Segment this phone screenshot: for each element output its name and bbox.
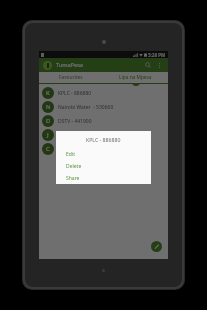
staticText: Edit	[66, 151, 75, 158]
staticText: Nairobi Water - 530600	[58, 104, 114, 111]
staticText: Delete	[66, 163, 82, 170]
button[interactable]: Lipa na Mpesa	[103, 72, 168, 83]
staticText: Lipa na Mpesa	[119, 74, 152, 81]
staticText: DSTV - 441900	[58, 118, 92, 125]
button[interactable]: Delete	[56, 160, 151, 172]
staticText: KPLC - 886880	[86, 136, 121, 143]
staticText: KPLC - 886880	[58, 90, 92, 97]
staticText: Share	[66, 175, 80, 182]
button[interactable]: More options	[154, 60, 164, 70]
staticText: N	[46, 103, 51, 111]
staticText: C	[46, 145, 50, 153]
button[interactable]: K	[39, 86, 168, 100]
button[interactable]: N	[39, 100, 168, 114]
button[interactable]: D	[39, 114, 168, 128]
button[interactable]: Share	[56, 172, 151, 184]
staticText: TumaPesa	[56, 61, 84, 69]
staticText: K	[46, 89, 50, 97]
button[interactable]: J	[39, 128, 168, 142]
staticText: J	[47, 131, 49, 139]
button[interactable]: App logo	[43, 61, 52, 70]
staticText: Favourites	[59, 74, 83, 81]
button[interactable]: Edit	[56, 148, 151, 160]
button[interactable]: C	[39, 142, 168, 156]
staticText: 3:28 PM	[148, 52, 166, 58]
button[interactable]: Favourites	[39, 72, 103, 83]
button[interactable]: Search	[143, 60, 153, 70]
staticText: D	[46, 117, 51, 125]
staticText: Jami Telecommunications - 328330	[58, 132, 141, 139]
button[interactable]: Add new entry	[151, 241, 162, 252]
staticText: Copia - 778220	[58, 146, 93, 153]
